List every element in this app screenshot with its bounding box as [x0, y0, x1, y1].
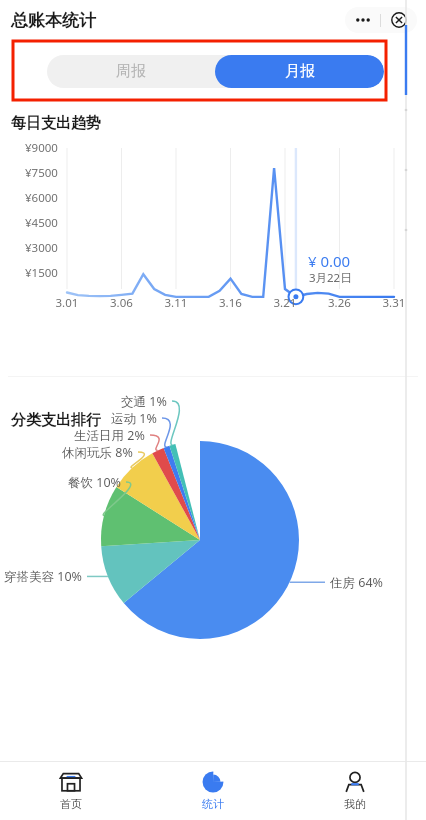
button[interactable]: 月报	[215, 55, 384, 88]
button[interactable]: 周报	[47, 55, 215, 88]
staticText: 我的	[344, 797, 366, 811]
staticText: 月报	[285, 62, 315, 81]
button[interactable]: 统计	[142, 771, 284, 811]
staticText: 统计	[202, 797, 224, 811]
staticText: 首页	[60, 797, 82, 811]
button[interactable]: Close	[381, 10, 417, 30]
staticText: 周报	[116, 62, 146, 81]
staticText: 分类支出排行	[11, 411, 101, 430]
staticText: 总账本统计	[11, 10, 96, 31]
staticText: 每日支出趋势	[11, 114, 101, 133]
button[interactable]: 首页	[0, 771, 142, 811]
button[interactable]: 我的	[284, 771, 426, 811]
button[interactable]: More options	[345, 10, 380, 30]
